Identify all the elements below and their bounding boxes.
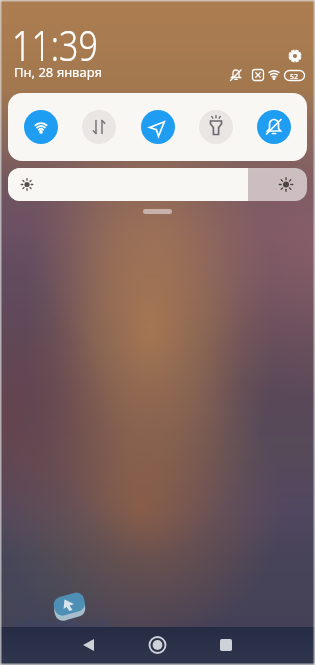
button[interactable] <box>283 44 307 68</box>
button[interactable] <box>24 110 58 144</box>
staticText: 11:39 <box>12 17 98 73</box>
button[interactable] <box>199 110 233 144</box>
staticText: mobile-review.com <box>12 615 110 630</box>
button[interactable] <box>202 627 250 665</box>
button[interactable] <box>133 627 181 665</box>
button[interactable] <box>82 110 116 144</box>
button[interactable] <box>141 110 175 144</box>
staticText: 52 <box>290 72 299 82</box>
staticText: Пн, 28 января <box>14 63 102 81</box>
button[interactable] <box>8 168 307 201</box>
button[interactable] <box>257 110 291 144</box>
button[interactable] <box>64 627 112 665</box>
